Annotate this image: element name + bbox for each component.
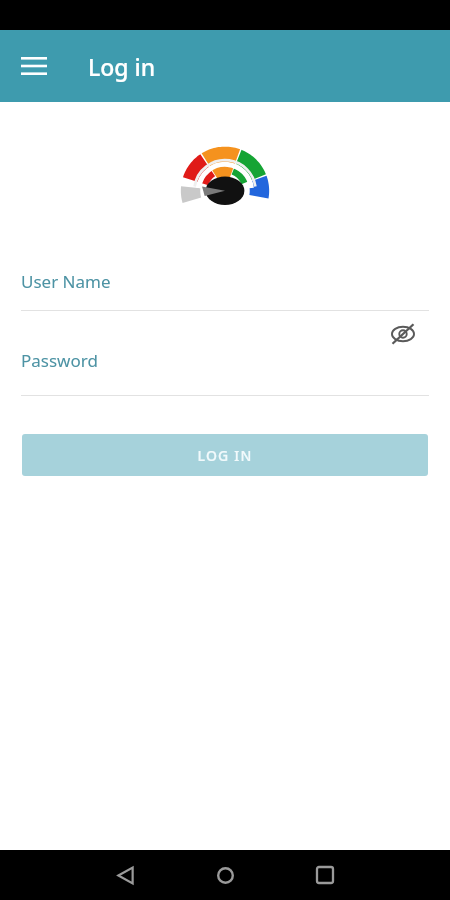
staticText: Log in (88, 51, 156, 82)
button[interactable]: Back (100, 850, 150, 900)
button[interactable]: Recent apps (300, 850, 350, 900)
button[interactable]: Password (0, 311, 450, 395)
staticText: LOG IN (197, 446, 253, 465)
staticText: Password (21, 349, 98, 372)
staticText: User Name (21, 270, 111, 293)
button[interactable]: Show password (381, 312, 425, 356)
button[interactable]: User Name (0, 252, 450, 310)
button[interactable]: LOG IN (22, 434, 428, 476)
button[interactable]: Home (200, 850, 250, 900)
button[interactable]: Open navigation menu (10, 42, 58, 90)
